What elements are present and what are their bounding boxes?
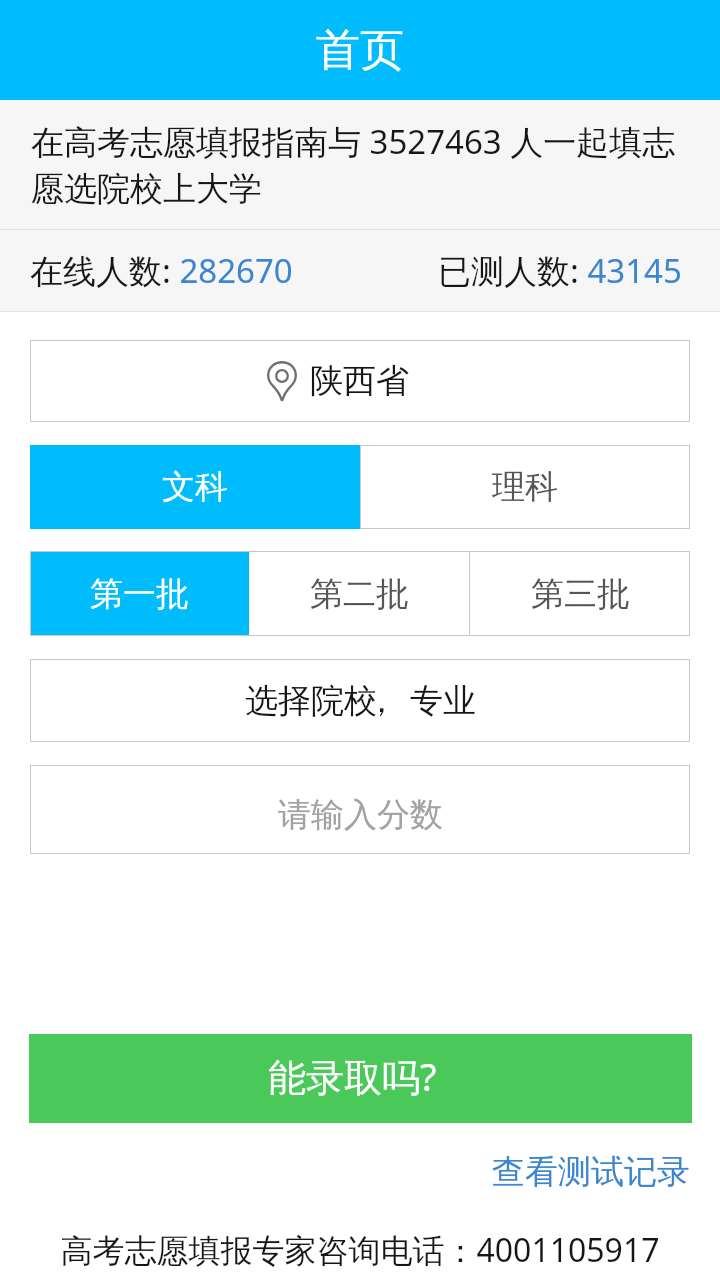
staticText: 在高考志愿填报指南与 3527463 人一起填志愿选院校上大学 <box>31 119 690 210</box>
staticText: 首页 <box>316 23 404 78</box>
staticText: 第三批 <box>531 573 630 615</box>
button[interactable]: 第一批 <box>30 551 249 636</box>
button[interactable]: 理科 <box>360 445 690 529</box>
staticText: 请输入分数 <box>278 794 443 836</box>
button[interactable]: 请输入分数 <box>30 765 690 854</box>
button[interactable]: 选择院校 <box>30 659 690 742</box>
staticText: 在线人数: 282670 <box>30 248 293 293</box>
staticText: ， <box>365 680 398 722</box>
staticText: 查看测试记录 <box>492 1151 690 1193</box>
button[interactable]: 第二批 <box>249 551 469 636</box>
button[interactable]: 查看测试记录 <box>482 1151 720 1193</box>
staticText: 选择院校 <box>245 680 377 722</box>
staticText: 理科 <box>492 466 558 508</box>
button[interactable]: 能录取吗? <box>29 1034 692 1123</box>
other: Location <box>267 361 297 402</box>
staticText: 高考志愿填报专家咨询电话：4001105917 <box>60 1228 660 1272</box>
staticText: 陕西省 <box>310 360 409 402</box>
staticText: 文科 <box>162 466 228 508</box>
staticText: 第一批 <box>90 573 189 615</box>
staticText: 第二批 <box>310 573 409 615</box>
button[interactable]: 第三批 <box>470 551 690 636</box>
button[interactable]: 文科 <box>30 445 360 529</box>
staticText: 能录取吗? <box>268 1050 437 1102</box>
button[interactable]: Location <box>30 340 690 422</box>
staticText: 已测人数: 43145 <box>438 248 682 293</box>
staticText: 专业 <box>410 680 476 722</box>
